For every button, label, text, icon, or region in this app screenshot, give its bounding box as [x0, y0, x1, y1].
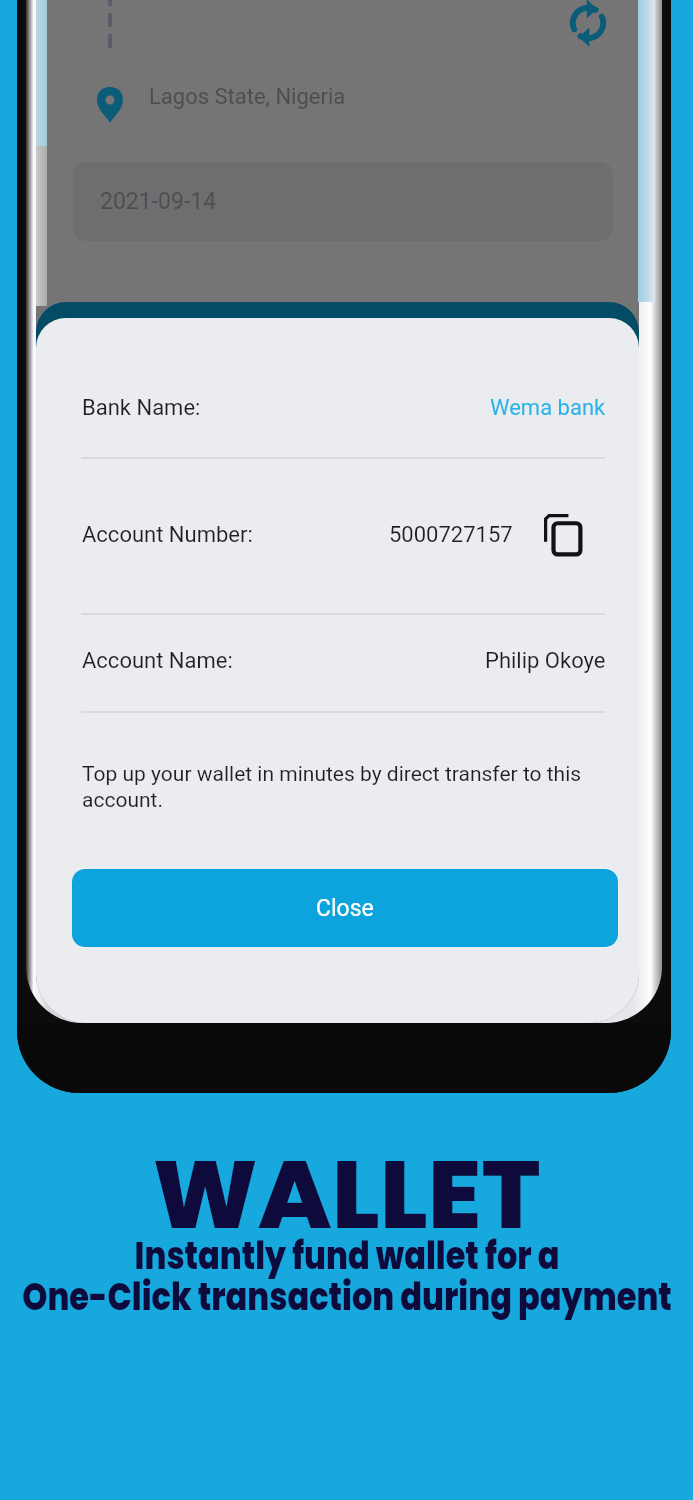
staticText: Philip Okoye: [485, 648, 606, 674]
staticText: 5000727157: [389, 522, 513, 548]
button[interactable]: Account Name:: [36, 623, 639, 699]
button[interactable]: Close: [72, 869, 618, 947]
staticText: Top up your wallet in minutes by direct …: [82, 762, 587, 812]
other: Refresh: [566, 1, 610, 45]
staticText: Close: [316, 895, 374, 922]
staticText: Lagos State, Nigeria: [149, 84, 346, 110]
staticText: Wema bank: [490, 395, 606, 421]
button[interactable]: Copy account number: [538, 508, 588, 562]
staticText: Account Number:: [82, 522, 253, 548]
staticText: Instantly fund wallet for a One-Click tr…: [22, 1228, 672, 1323]
staticText: Account Name:: [82, 648, 233, 674]
button[interactable]: 2021-09-14: [73, 162, 613, 241]
staticText: WALLET: [152, 1128, 541, 1261]
staticText: 2021-09-14: [100, 188, 217, 215]
staticText: Bank Name:: [82, 395, 201, 421]
button[interactable]: Bank Name:: [36, 370, 639, 446]
button[interactable]: Account Number:: [36, 497, 639, 573]
